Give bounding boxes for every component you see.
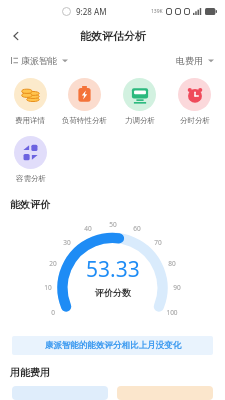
button[interactable]: Back bbox=[5, 25, 27, 47]
staticText: 70 bbox=[154, 238, 162, 247]
staticText: 电费用 bbox=[176, 55, 203, 66]
button[interactable]: 电费用 bbox=[174, 53, 216, 68]
staticText: 费用详情 bbox=[15, 116, 45, 125]
staticText: 90 bbox=[173, 283, 181, 292]
button[interactable]: 分时分析 bbox=[167, 75, 222, 128]
staticText: 康派智能 bbox=[21, 55, 57, 66]
staticText: 力调分析 bbox=[125, 116, 155, 125]
button[interactable]: 康派智能 bbox=[9, 53, 70, 68]
staticText: 能效评价 bbox=[10, 198, 50, 211]
button[interactable]: 容需分析 bbox=[3, 133, 58, 186]
staticText: 评价分数 bbox=[95, 287, 131, 298]
button[interactable]: 康派智能的能效评分相比上月没变化 bbox=[12, 336, 213, 355]
staticText: 负荷特性分析 bbox=[62, 116, 107, 125]
staticText: 53.33 bbox=[86, 255, 140, 284]
staticText: 139K bbox=[151, 8, 163, 15]
button[interactable]: 力调分析 bbox=[112, 75, 167, 128]
staticText: 用能费用 bbox=[10, 366, 50, 379]
staticText: 分时分析 bbox=[180, 116, 210, 125]
staticText: 10 bbox=[44, 283, 52, 292]
staticText: 9:28 AM bbox=[76, 6, 107, 17]
staticText: 40 bbox=[84, 224, 92, 233]
staticText: 容需分析 bbox=[16, 174, 46, 183]
button[interactable]: 费用详情 bbox=[3, 75, 57, 128]
button[interactable]: 负荷特性分析 bbox=[57, 75, 112, 128]
staticText: 20 bbox=[49, 259, 57, 268]
staticText: 30 bbox=[63, 238, 71, 247]
staticText: 100 bbox=[166, 308, 178, 317]
staticText: 50 bbox=[109, 220, 117, 229]
button[interactable] bbox=[117, 386, 213, 400]
staticText: 能效评估分析 bbox=[80, 29, 146, 43]
staticText: 80 bbox=[168, 259, 176, 268]
staticText: 60 bbox=[133, 224, 141, 233]
staticText: 0 bbox=[51, 308, 55, 317]
staticText: 康派智能的能效评分相比上月没变化 bbox=[45, 340, 181, 351]
